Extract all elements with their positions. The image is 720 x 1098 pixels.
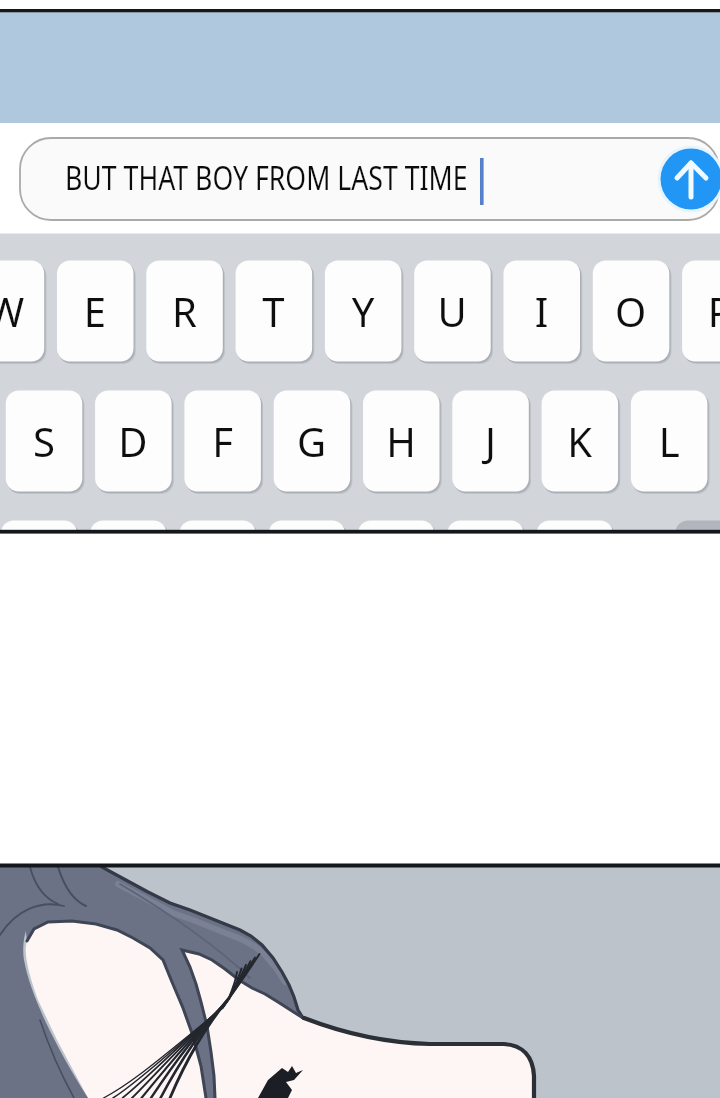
button[interactable]: Send	[0, 0, 720, 1098]
button[interactable]	[0, 0, 720, 1098]
